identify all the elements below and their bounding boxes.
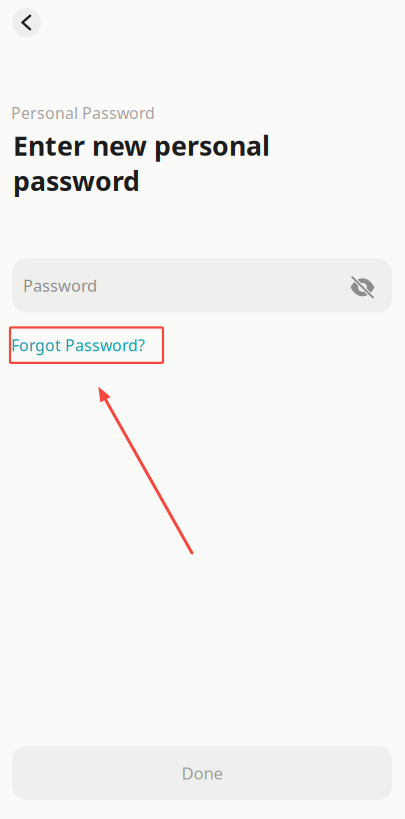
button[interactable]: Back [12,8,41,37]
staticText: Personal Password [11,102,155,124]
button[interactable]: Done [12,746,392,800]
button[interactable]: Forgot Password? [10,327,163,363]
button[interactable]: Show password [350,276,375,299]
staticText: Done [181,762,222,784]
staticText: Password [23,274,97,297]
staticText: Enter new personal password [13,128,270,198]
staticText: Forgot Password? [11,334,145,356]
